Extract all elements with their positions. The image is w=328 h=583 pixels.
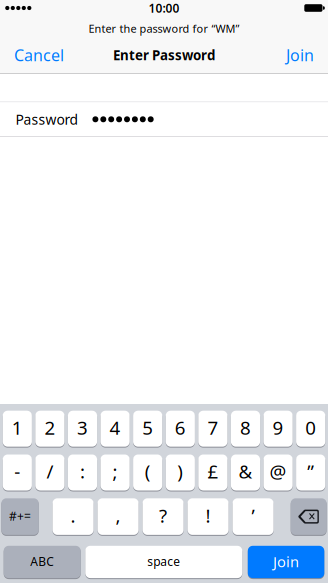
staticText: ’ — [252, 503, 255, 528]
button[interactable]: 5 — [133, 410, 162, 447]
staticText: £ — [207, 459, 218, 484]
staticText: @ — [270, 459, 287, 484]
button[interactable]: 0 — [296, 410, 325, 447]
staticText: . — [71, 503, 76, 528]
button[interactable]: 8 — [231, 410, 260, 447]
button[interactable]: & — [231, 454, 260, 491]
staticText: ! — [206, 503, 211, 528]
button[interactable]: , — [97, 498, 139, 535]
button[interactable]: #+= — [1, 498, 39, 535]
staticText: ABC — [30, 553, 54, 569]
staticText: ? — [159, 503, 167, 528]
button[interactable]: ( — [133, 454, 162, 491]
staticText: 1 — [12, 415, 23, 440]
staticText: 6 — [175, 415, 186, 440]
staticText: - — [14, 459, 20, 484]
button[interactable]: 3 — [68, 410, 97, 447]
staticText: 10:00 — [148, 0, 179, 16]
button[interactable]: ; — [100, 454, 130, 491]
staticText: , — [116, 503, 121, 528]
staticText: 7 — [207, 415, 218, 440]
button[interactable]: - — [3, 454, 32, 491]
staticText: Join — [273, 552, 299, 571]
staticText: 3 — [77, 415, 88, 440]
staticText: ) — [177, 459, 183, 484]
button[interactable]: space — [85, 545, 242, 579]
staticText: 0 — [305, 415, 316, 440]
button[interactable]: Join — [248, 545, 324, 579]
button[interactable]: ” — [296, 454, 325, 491]
staticText: ( — [145, 459, 151, 484]
button[interactable]: ? — [142, 498, 184, 535]
staticText: 2 — [44, 415, 55, 440]
staticText: : — [80, 459, 85, 484]
button[interactable]: ABC — [4, 545, 81, 579]
staticText: Enter Password — [113, 46, 215, 64]
button[interactable]: 7 — [198, 410, 227, 447]
button[interactable]: 9 — [263, 410, 293, 447]
button[interactable]: Delete — [291, 498, 327, 535]
staticText: ; — [113, 459, 118, 484]
staticText: 9 — [273, 415, 284, 440]
staticText: 5 — [142, 415, 153, 440]
staticText: #+= — [9, 508, 31, 524]
staticText: 4 — [110, 415, 121, 440]
button[interactable]: 6 — [166, 410, 195, 447]
button[interactable]: . — [52, 498, 94, 535]
button[interactable]: 2 — [35, 410, 64, 447]
button[interactable]: @ — [263, 454, 293, 491]
staticText: & — [238, 459, 252, 484]
button[interactable]: £ — [198, 454, 227, 491]
button[interactable]: ’ — [232, 498, 274, 535]
staticText: Enter the password for “WM” — [88, 21, 239, 36]
staticText: / — [46, 459, 53, 484]
button[interactable]: Join — [277, 36, 323, 74]
button[interactable]: 1 — [3, 410, 32, 447]
staticText: 8 — [240, 415, 251, 440]
button[interactable]: ! — [187, 498, 229, 535]
staticText: space — [147, 553, 180, 569]
button[interactable]: Cancel — [5, 36, 73, 74]
staticText: Cancel — [14, 44, 64, 66]
button[interactable]: / — [35, 454, 64, 491]
button[interactable]: : — [68, 454, 97, 491]
button[interactable]: ) — [166, 454, 195, 491]
staticText: Password — [15, 110, 78, 129]
staticText: Join — [286, 44, 314, 66]
staticText: ” — [307, 459, 314, 484]
button[interactable]: 4 — [100, 410, 130, 447]
